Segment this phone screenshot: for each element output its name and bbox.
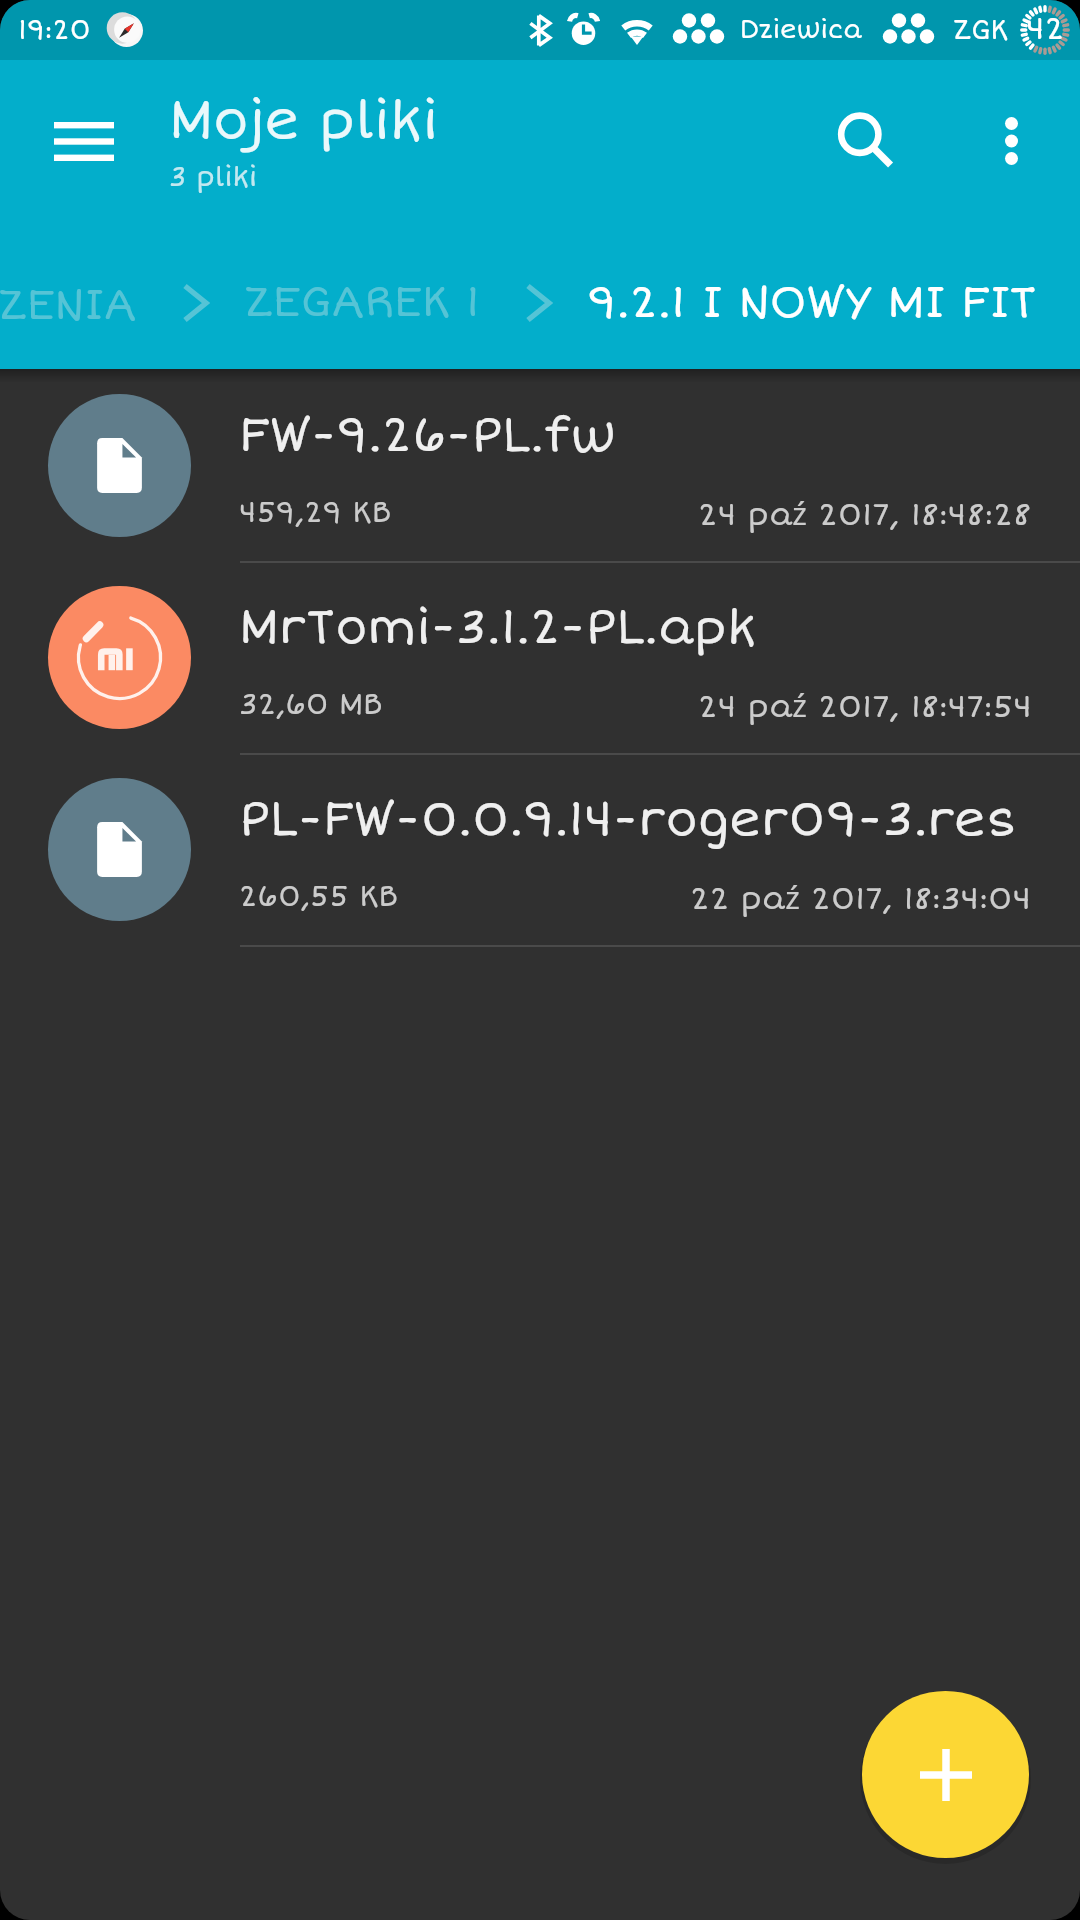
staticText: 32,60 MB (239, 687, 383, 723)
button[interactable]: MrTomi-3.1.2-PL.apk (0, 561, 1080, 753)
button[interactable]: URZĄDZENIA (0, 273, 137, 332)
staticText: FW-9.26-PL.fw (239, 406, 616, 465)
staticText: PL-FW-0.0.9.14-roger09-3.res (239, 790, 1018, 849)
button[interactable]: Więcej opcji (956, 86, 1066, 196)
button[interactable]: Menu (30, 87, 138, 195)
staticText: Dziewica (740, 15, 862, 46)
staticText: 459,29 KB (239, 495, 392, 531)
staticText: MrTomi-3.1.2-PL.apk (239, 598, 757, 657)
staticText: 24 paź 2017, 18:47:54 (698, 684, 1032, 726)
button[interactable]: Dodaj plik (862, 1691, 1029, 1858)
staticText: 260,55 KB (239, 879, 398, 915)
staticText: ZGK (953, 14, 1009, 47)
staticText: 42 (1026, 10, 1065, 48)
staticText: 3 pliki (169, 161, 258, 194)
button[interactable]: FW-9.26-PL.fw (0, 369, 1080, 561)
button[interactable]: ZEGAREK 1 (244, 276, 480, 329)
button[interactable]: Szukaj (811, 86, 921, 196)
staticText: Moje pliki (169, 88, 439, 153)
staticText: 19:20 (18, 14, 91, 47)
button[interactable]: PL-FW-0.0.9.14-roger09-3.res (0, 753, 1080, 945)
staticText: 22 paź 2017, 18:34:04 (690, 876, 1032, 918)
staticText: 24 paź 2017, 18:48:28 (698, 492, 1032, 534)
button[interactable]: 9.2.1 I NOWY MI FIT (587, 275, 1037, 330)
